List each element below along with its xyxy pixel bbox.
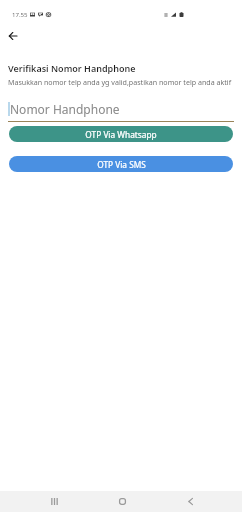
staticText: Nomor Handphone: [10, 101, 120, 117]
staticText: 17.55: [12, 10, 28, 18]
staticText: OTP Via Whatsapp: [85, 129, 157, 140]
button[interactable]: Back: [176, 494, 204, 509]
button[interactable]: OTP Via Whatsapp: [9, 126, 233, 142]
staticText: Masukkan nomor telp anda yg valid,pastik…: [8, 77, 232, 87]
staticText: OTP Via SMS: [97, 159, 146, 170]
button[interactable]: OTP Via SMS: [9, 156, 233, 172]
button[interactable]: Recent apps: [40, 494, 68, 509]
button[interactable]: Home: [108, 494, 136, 509]
staticText: Verifikasi Nomor Handphone: [8, 62, 136, 74]
button[interactable]: Back: [3, 26, 23, 46]
